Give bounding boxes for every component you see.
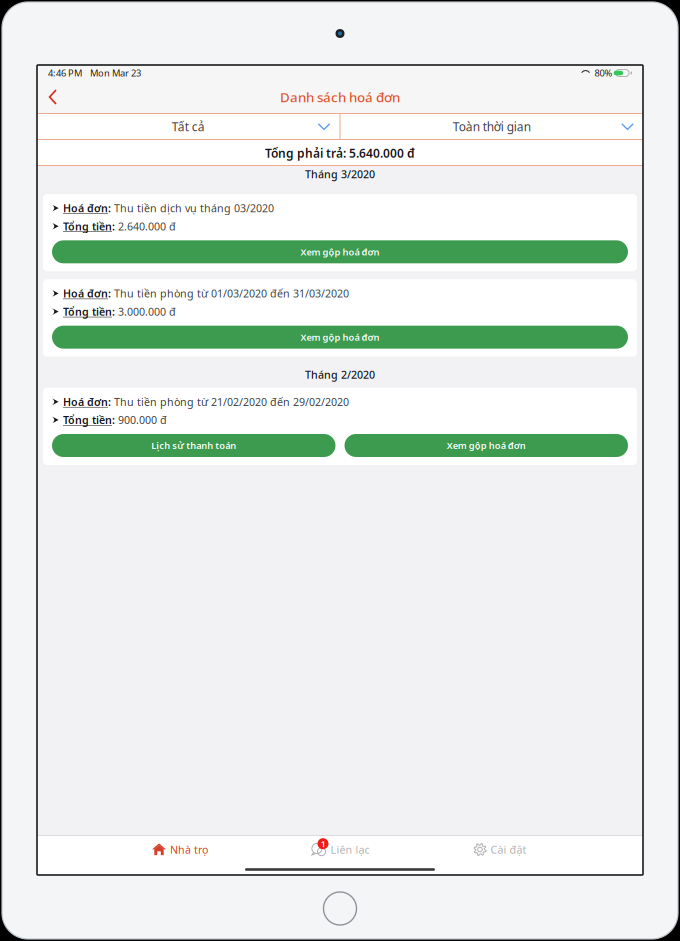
staticText: 900.000 đ	[118, 413, 167, 427]
button[interactable]: Xem gộp hoá đơn	[52, 326, 628, 349]
staticText: Xem gộp hoá đơn	[300, 246, 379, 258]
staticText: Hoá đơn	[63, 286, 108, 300]
staticText: Xem gộp hoá đơn	[300, 331, 379, 343]
staticText: Tất cả	[172, 118, 205, 134]
staticText: Hoá đơn	[63, 201, 108, 215]
staticText: Thu tiền phòng từ 01/03/2020 đến 31/03/2…	[114, 286, 349, 300]
staticText: :	[108, 201, 111, 215]
staticText: Tổng tiền	[63, 219, 112, 233]
staticText: Tổng tiền	[63, 304, 112, 319]
staticText: :	[108, 395, 111, 409]
staticText: 2.640.000 đ	[118, 219, 176, 233]
staticText: :	[108, 286, 111, 300]
button[interactable]: Back	[42, 83, 68, 111]
button[interactable]: Tất cả	[37, 113, 339, 140]
staticText: Liên lạc	[330, 842, 369, 857]
staticText: 1	[320, 837, 325, 850]
staticText: 80%	[595, 67, 613, 79]
staticText: Thu tiền phòng từ 21/02/2020 đến 29/02/2…	[114, 395, 349, 409]
staticText: Mon Mar 23	[90, 67, 141, 79]
button[interactable]: Nhà trọ	[100, 835, 260, 864]
button[interactable]: Xem gộp hoá đơn	[344, 434, 628, 457]
staticText: Toàn thời gian	[453, 118, 531, 134]
button[interactable]: Lịch sử thanh toán	[52, 434, 335, 457]
staticText: Thu tiền dịch vụ tháng 03/2020	[114, 201, 274, 215]
staticText: 4:46 PM	[48, 67, 82, 79]
staticText: :	[112, 413, 115, 427]
staticText: Tháng 3/2020	[305, 167, 375, 181]
staticText: Tháng 2/2020	[305, 368, 375, 382]
staticText: 3.000.000 đ	[118, 304, 176, 319]
staticText: Nhà trọ	[170, 842, 208, 857]
staticText: :	[112, 219, 115, 233]
button[interactable]: 1	[260, 835, 420, 864]
staticText: Cài đặt	[490, 842, 526, 857]
button[interactable]: Cài đặt	[420, 835, 580, 864]
staticText: Danh sách hoá đơn	[280, 88, 400, 106]
staticText: Lịch sử thanh toán	[151, 439, 236, 452]
staticText: Tổng phải trả: 5.640.000 đ	[265, 145, 415, 161]
staticText: Tổng tiền	[63, 413, 112, 427]
button[interactable]: Xem gộp hoá đơn	[52, 240, 628, 263]
staticText: Xem gộp hoá đơn	[447, 439, 526, 452]
button[interactable]: Toàn thời gian	[340, 113, 643, 140]
staticText: :	[112, 304, 115, 319]
staticText: Hoá đơn	[63, 395, 108, 409]
